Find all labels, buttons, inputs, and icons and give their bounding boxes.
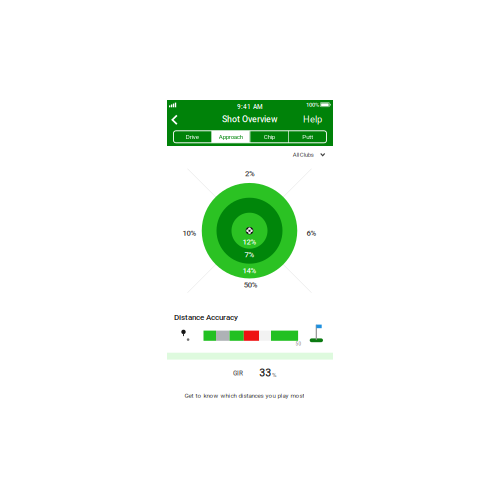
staticText: 10%: [182, 229, 196, 238]
button[interactable]: Putt: [289, 131, 326, 143]
staticText: Chip: [264, 133, 275, 140]
staticText: Get to know which distances you play mos…: [184, 392, 304, 399]
staticText: Approach: [219, 133, 243, 140]
staticText: 33: [259, 367, 271, 379]
staticText: 100%: [306, 101, 319, 108]
staticText: 50%: [244, 280, 258, 289]
staticText: %: [272, 371, 276, 378]
staticText: 12%: [242, 237, 256, 246]
staticText: 50: [295, 341, 301, 347]
staticText: Putt: [302, 133, 313, 140]
button[interactable]: Drive: [173, 131, 211, 143]
staticText: 6%: [306, 228, 316, 238]
staticText: All Clubs: [293, 151, 314, 158]
button[interactable]: All Clubs: [285, 149, 325, 161]
staticText: Drive: [186, 133, 199, 140]
staticText: Shot Overview: [222, 114, 278, 124]
button[interactable]: Back: [166, 111, 184, 129]
staticText: 7%: [244, 250, 254, 259]
staticText: 14%: [242, 266, 256, 275]
staticText: GIR: [233, 369, 243, 377]
button[interactable]: Approach: [212, 131, 250, 143]
staticText: Distance Accuracy: [174, 312, 238, 322]
staticText: Help: [303, 114, 322, 125]
button[interactable]: Help: [300, 110, 326, 128]
button[interactable]: Chip: [250, 131, 288, 143]
staticText: 2%: [245, 169, 255, 178]
staticText: 9:41 AM: [237, 103, 263, 110]
